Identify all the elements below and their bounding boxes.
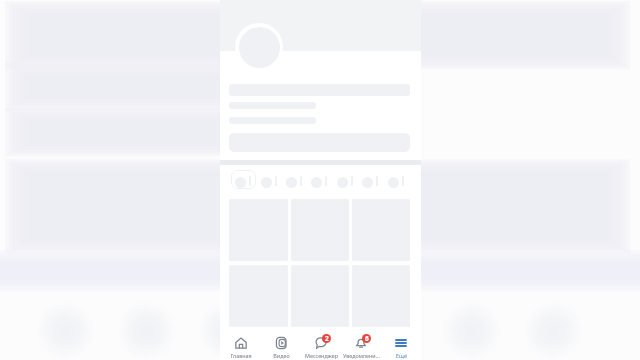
button[interactable]: Profile photo (239, 27, 280, 68)
staticText: Уведомлени... (343, 352, 380, 359)
staticText: Видео (273, 352, 290, 359)
button[interactable]: Главная (220, 327, 261, 360)
staticText: 6 (365, 334, 369, 343)
staticText: Ещё (396, 352, 407, 359)
button[interactable]: Видео (261, 327, 301, 360)
button[interactable]: 6 (341, 327, 381, 360)
staticText: 2 (325, 334, 329, 343)
button[interactable]: Ещё (381, 327, 421, 360)
staticText: Мессенджер (305, 352, 338, 359)
button[interactable]: 2 (301, 327, 341, 360)
button[interactable]: Add story (231, 170, 256, 189)
staticText: Главная (230, 352, 252, 359)
